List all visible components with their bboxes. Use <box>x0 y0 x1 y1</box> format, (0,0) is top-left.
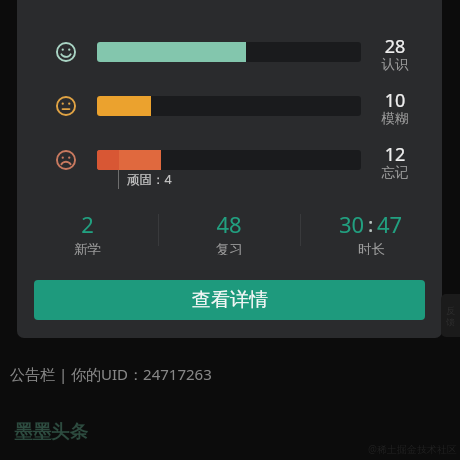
staticText: : <box>368 211 374 238</box>
button[interactable]: 2 <box>17 209 158 255</box>
staticText: 馈 <box>446 316 455 327</box>
staticText: 忘记 <box>365 164 425 181</box>
staticText: @稀土掘金技术社区 <box>368 442 457 456</box>
staticText: 认识 <box>365 56 425 73</box>
staticText: 顽固：4 <box>127 171 172 188</box>
staticText: 47 <box>377 209 403 239</box>
staticText: 时长 <box>358 241 385 255</box>
staticText: 28 <box>365 34 425 59</box>
button[interactable]: 墨墨头条 <box>14 420 88 443</box>
button[interactable]: 查看详情 <box>34 280 425 320</box>
other: Forgotten <box>56 150 76 170</box>
staticText: 48 <box>216 209 242 239</box>
other: Known <box>56 42 76 62</box>
staticText: 查看详情 <box>192 288 268 312</box>
staticText: 复习 <box>216 241 243 255</box>
button[interactable]: 48 <box>158 209 300 255</box>
button[interactable]: 公告栏 | 你的UID：24717263 <box>0 354 460 394</box>
staticText: 12 <box>365 142 425 167</box>
staticText: 反 <box>446 305 455 316</box>
staticText: 10 <box>365 88 425 113</box>
button[interactable]: 30 <box>300 209 442 255</box>
other: Vague <box>56 96 76 116</box>
staticText: 30 <box>339 209 365 239</box>
button[interactable]: Feedback <box>441 294 460 337</box>
staticText: 新学 <box>74 241 101 255</box>
staticText: 公告栏 | 你的UID：24717263 <box>10 364 212 384</box>
staticText: 2 <box>81 209 94 239</box>
staticText: 模糊 <box>365 110 425 127</box>
